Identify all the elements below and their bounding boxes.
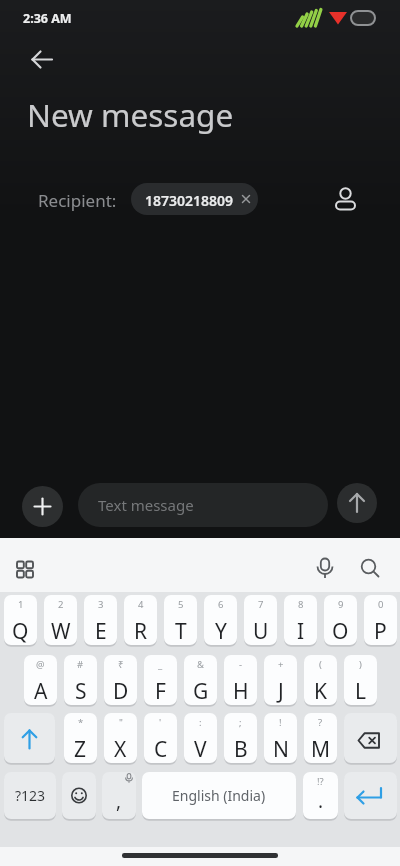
button[interactable] (344, 772, 397, 819)
button[interactable]: !? (303, 772, 338, 819)
button[interactable] (62, 772, 96, 819)
staticText: W (51, 617, 71, 646)
button[interactable]: ? (304, 713, 337, 763)
staticText: ) (359, 658, 362, 671)
staticText: V (194, 735, 207, 764)
button[interactable]: # (64, 655, 97, 705)
staticText: Q (12, 617, 29, 646)
staticText: " (119, 716, 123, 729)
staticText: K (314, 677, 327, 706)
button[interactable]: 2 (44, 595, 77, 645)
staticText: 18730218809 (145, 191, 234, 210)
staticText: T (175, 617, 187, 646)
button[interactable]: ( (304, 655, 337, 705)
staticText: New message (27, 93, 234, 136)
button[interactable] (22, 486, 63, 527)
staticText: A (34, 677, 48, 706)
button[interactable]: _ (144, 655, 177, 705)
button[interactable]: @ (24, 655, 57, 705)
staticText: M (311, 735, 331, 764)
staticText: 9 (338, 598, 344, 611)
staticText: ( (319, 658, 322, 671)
staticText: 2 (58, 598, 64, 611)
staticText: 3 (98, 598, 104, 611)
button[interactable] (337, 483, 377, 523)
button[interactable]: 5 (164, 595, 197, 645)
button[interactable]: 0 (364, 595, 397, 645)
staticText: @ (36, 658, 45, 671)
button[interactable]: 4 (124, 595, 157, 645)
staticText: S (75, 677, 87, 706)
staticText: # (77, 658, 84, 671)
staticText: 8 (298, 598, 304, 611)
staticText: + (278, 658, 284, 671)
button[interactable]: * (64, 713, 97, 763)
staticText: H (233, 677, 249, 706)
staticText: J (278, 677, 284, 706)
staticText: 7 (258, 598, 264, 611)
staticText: Text message (98, 495, 194, 515)
staticText: I (297, 617, 305, 646)
button[interactable] (18, 40, 66, 80)
staticText: 5 (178, 598, 184, 611)
button[interactable]: : (184, 713, 217, 763)
button[interactable]: ₹ (104, 655, 137, 705)
staticText: !? (317, 775, 324, 788)
button[interactable]: 3 (84, 595, 117, 645)
staticText: N (273, 735, 289, 764)
staticText: P (374, 617, 387, 646)
button[interactable]: 8 (284, 595, 317, 645)
button[interactable]: 1 (4, 595, 37, 645)
staticText: 0 (378, 598, 384, 611)
button[interactable] (8, 552, 42, 586)
staticText: X (114, 735, 127, 764)
button[interactable]: & (184, 655, 217, 705)
button[interactable]: 9 (324, 595, 357, 645)
staticText: ' (159, 716, 162, 729)
staticText: . (318, 788, 324, 814)
button[interactable]: ! (264, 713, 297, 763)
button[interactable]: ?123 (4, 772, 56, 819)
staticText: B (234, 735, 248, 764)
staticText: G (193, 677, 209, 706)
button[interactable]: + (264, 655, 297, 705)
button[interactable]: English (India) (142, 772, 296, 819)
button[interactable]: ; (224, 713, 257, 763)
staticText: C (154, 735, 168, 764)
staticText: E (95, 617, 107, 646)
staticText: O (332, 617, 349, 646)
staticText: U (253, 617, 269, 646)
button[interactable]: 7 (244, 595, 277, 645)
button[interactable]: - (224, 655, 257, 705)
staticText: * (78, 716, 84, 729)
button[interactable] (4, 713, 55, 763)
staticText: ? (318, 716, 323, 729)
staticText: , (116, 788, 122, 814)
staticText: ₹ (118, 658, 124, 671)
staticText: F (155, 677, 166, 706)
staticText: R (134, 617, 148, 646)
staticText: Z (74, 735, 87, 764)
button[interactable]: , (102, 772, 136, 819)
staticText: Y (215, 617, 227, 646)
staticText: - (239, 658, 243, 671)
staticText: Recipient: (38, 189, 117, 212)
staticText: _ (158, 658, 163, 671)
button[interactable] (308, 552, 342, 586)
staticText: : (199, 716, 202, 729)
button[interactable]: 18730218809 (131, 183, 258, 215)
button[interactable]: ) (344, 655, 377, 705)
staticText: D (113, 677, 129, 706)
staticText: 2:36 AM (23, 10, 72, 27)
staticText: 6 (218, 598, 224, 611)
button[interactable] (352, 552, 386, 586)
button[interactable]: " (104, 713, 137, 763)
staticText: ?123 (15, 786, 46, 805)
staticText: English (India) (172, 786, 266, 805)
button[interactable]: Text message (78, 483, 328, 527)
staticText: L (355, 677, 367, 706)
button[interactable]: 6 (204, 595, 237, 645)
button[interactable] (327, 180, 365, 218)
button[interactable]: ' (144, 713, 177, 763)
button[interactable] (344, 713, 397, 763)
